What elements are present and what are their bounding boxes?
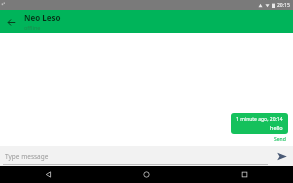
button[interactable]: Recents [195, 166, 293, 183]
button[interactable]: Home [97, 166, 195, 183]
button[interactable]: Back [0, 166, 97, 183]
staticText: Type message [5, 152, 49, 161]
button[interactable]: Type message [0, 147, 271, 165]
button[interactable]: Send [272, 136, 288, 143]
button[interactable]: Back [0, 11, 22, 33]
staticText: 20:15 [277, 2, 290, 9]
staticText: hello [270, 124, 283, 131]
staticText: offline [24, 24, 41, 31]
button[interactable]: Send [271, 146, 293, 166]
staticText: Neo Leso [24, 12, 61, 23]
staticText: 1 minute ago, 20:14 [236, 116, 283, 123]
button[interactable]: 1 minute ago, 20:14 [231, 113, 288, 134]
